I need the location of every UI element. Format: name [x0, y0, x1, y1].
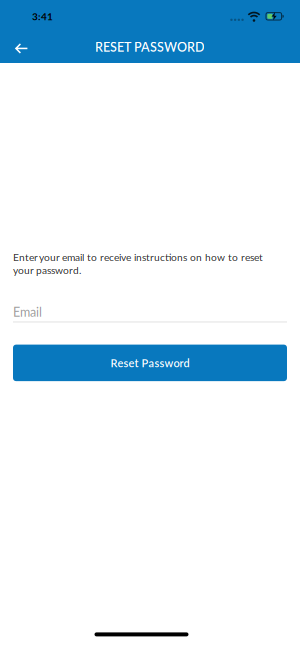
staticText: Email — [13, 304, 42, 319]
staticText: Reset Password — [110, 356, 189, 369]
staticText: RESET PASSWORD — [95, 39, 205, 54]
staticText: 3:41 — [32, 10, 53, 22]
staticText: Enter your email to receive instructions… — [13, 251, 263, 276]
button[interactable]: Back — [0, 32, 27, 62]
button[interactable]: Email — [13, 304, 287, 323]
button[interactable]: Reset Password — [13, 345, 287, 381]
